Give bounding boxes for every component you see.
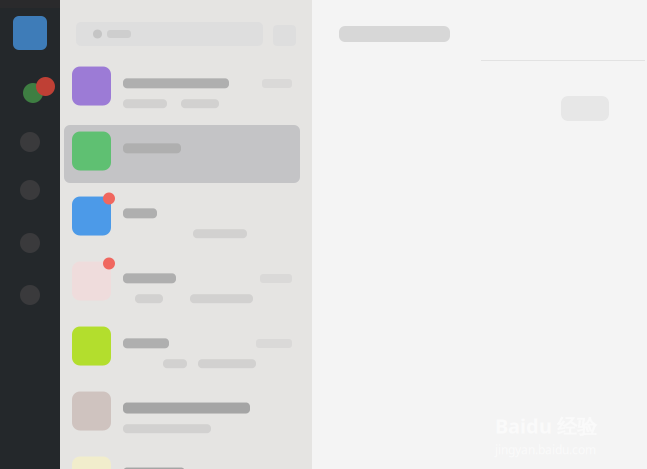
button[interactable]: Files: [0, 226, 60, 260]
button[interactable]: Profile: [13, 16, 47, 50]
button[interactable]: Chats: [17, 74, 49, 100]
button[interactable]: [60, 378, 312, 443]
button[interactable]: [60, 248, 312, 313]
button[interactable]: Favorites: [0, 173, 60, 207]
button[interactable]: [60, 313, 312, 378]
button[interactable]: Contacts: [0, 125, 60, 159]
button[interactable]: [60, 443, 312, 469]
button[interactable]: [60, 53, 312, 118]
button[interactable]: Search: [76, 22, 263, 46]
button[interactable]: [60, 118, 312, 183]
button[interactable]: [60, 183, 312, 248]
button[interactable]: Moments: [0, 278, 60, 312]
